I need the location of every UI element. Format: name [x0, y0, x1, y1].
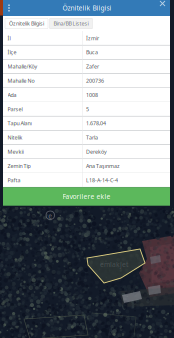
staticText: 1.678,04	[86, 120, 106, 127]
button[interactable]: Öznitelik Bilgisi	[5, 18, 48, 29]
staticText: Mahalle No	[7, 77, 34, 84]
staticText: Öznitelik Bilgisi	[62, 4, 111, 12]
staticText: Nitelik	[7, 134, 22, 141]
button[interactable]: Close	[159, 0, 170, 16]
staticText: 200736	[86, 77, 104, 84]
staticText: 5	[86, 106, 89, 113]
staticText: L18-A-14-C-4	[86, 177, 118, 184]
staticText: Parsel	[7, 106, 22, 113]
button[interactable]: Menu	[3, 0, 15, 16]
staticText: Dereköy	[86, 148, 107, 155]
staticText: Bina/BB Listesi	[53, 20, 88, 27]
staticText: Buca	[86, 49, 98, 56]
staticText: Tarla	[86, 134, 98, 141]
staticText: Mevkii	[7, 148, 23, 155]
staticText: Ana Taşınmaz	[86, 162, 120, 169]
staticText: İzmir	[86, 35, 99, 42]
staticText: Zafer	[86, 63, 99, 70]
staticText: Favorilere ekle	[62, 192, 110, 201]
staticText: Zemin Tip	[7, 162, 30, 169]
button[interactable]: Bina/BB Listesi	[49, 18, 92, 29]
staticText: Tapu Alanı	[7, 120, 31, 127]
staticText: Öznitelik Bilgisi	[9, 20, 44, 27]
staticText: İl	[7, 35, 10, 42]
staticText: Ada	[7, 91, 16, 98]
button[interactable]: Favorilere ekle	[3, 187, 170, 206]
staticText: e	[48, 212, 52, 220]
staticText: 1008	[86, 91, 98, 98]
staticText: emlakjet	[100, 260, 128, 269]
staticText: Mahalle/Köy	[7, 63, 37, 70]
staticText: İlçe	[7, 49, 16, 56]
staticText: Pafta	[7, 177, 20, 184]
